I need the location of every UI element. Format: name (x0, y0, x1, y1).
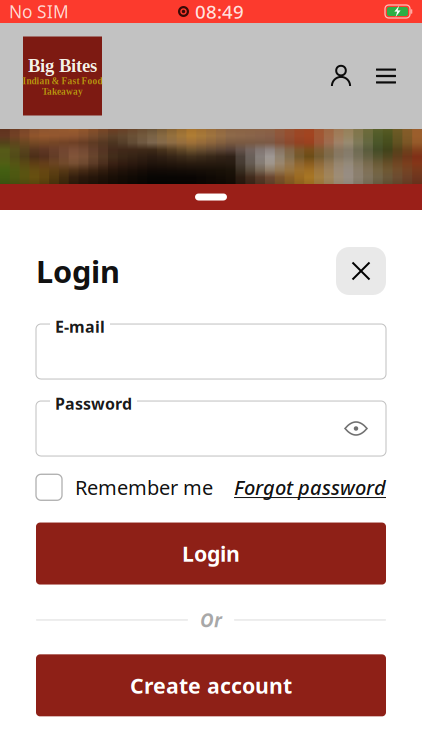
button[interactable]: Show password (344, 419, 368, 437)
staticText: Login (182, 539, 240, 568)
staticText: No SIM (9, 0, 69, 23)
button[interactable]: Remember me (36, 474, 213, 501)
button[interactable]: Login (36, 523, 386, 585)
button[interactable]: Big Bites Home (23, 36, 102, 115)
staticText: Indian & Fast Food (22, 76, 102, 86)
button[interactable]: Account (324, 59, 358, 93)
staticText: Password (55, 393, 132, 414)
button[interactable]: Close (336, 247, 386, 295)
staticText: Or (200, 608, 222, 632)
staticText: Login (36, 251, 120, 291)
button[interactable]: Menu (369, 59, 403, 93)
button[interactable]: Create account (36, 654, 386, 716)
staticText: Remember me (75, 474, 213, 501)
staticText: Takeaway (42, 86, 83, 97)
staticText: Create account (130, 671, 292, 699)
button[interactable]: Forgot password (234, 474, 386, 501)
staticText: 08:49 (195, 0, 244, 24)
staticText: Forgot password (234, 474, 386, 501)
staticText: Big Bites (28, 55, 97, 76)
staticText: E-mail (55, 316, 105, 337)
